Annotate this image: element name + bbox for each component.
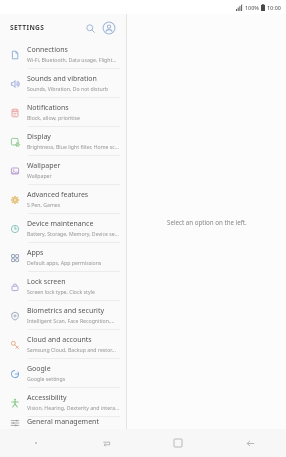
staticText: Vision, Hearing, Dexterity and intera... (27, 404, 120, 411)
button[interactable]: Recents (142, 429, 214, 457)
staticText: Sounds, Vibration, Do not disturb (27, 85, 108, 92)
staticText: General management (27, 417, 99, 427)
staticText: 10:00 (267, 4, 281, 11)
staticText: Advanced features (27, 190, 89, 200)
staticText: Google settings (27, 375, 66, 382)
staticText: Device maintenance (27, 219, 94, 229)
button[interactable]: Back (214, 429, 286, 457)
staticText: Connections (27, 45, 68, 55)
staticText: Select an option on the left. (167, 218, 247, 226)
staticText: Biometrics and security (27, 306, 104, 316)
staticText: Block, allow, prioritise (27, 114, 80, 121)
button[interactable]: Account (100, 19, 117, 36)
staticText: 100% (245, 4, 259, 11)
staticText: Samsung Cloud, Backup and restor... (27, 346, 116, 353)
button[interactable]: Advanced features (0, 185, 126, 213)
button[interactable]: Cloud and accounts (0, 330, 126, 358)
button[interactable]: Display (0, 127, 126, 155)
staticText: Wi-Fi, Bluetooth, Data usage, Flight... (27, 56, 117, 63)
button[interactable]: Notifications (0, 98, 126, 126)
staticText: Intelligent Scan, Face Recognition,... (27, 317, 115, 324)
staticText: Battery, Storage, Memory, Device se... (27, 230, 119, 237)
staticText: Wallpaper (27, 172, 52, 179)
staticText: S Pen, Games (27, 201, 61, 208)
staticText: Display (27, 132, 51, 142)
button[interactable]: General management (0, 417, 126, 429)
button[interactable]: Google (0, 359, 126, 387)
staticText: Screen lock type, Clock style (27, 288, 95, 295)
button[interactable]: Apps (0, 243, 126, 271)
staticText: Notifications (27, 103, 69, 113)
button[interactable]: Keyboard (71, 429, 142, 457)
staticText: Cloud and accounts (27, 335, 92, 345)
button[interactable]: Wallpaper (0, 156, 126, 184)
button[interactable]: Lock screen (0, 272, 126, 300)
button[interactable]: Accessibility (0, 388, 126, 416)
button[interactable]: Connections (0, 40, 126, 68)
staticText: Apps (27, 248, 44, 258)
staticText: Default apps, App permissions (27, 259, 102, 266)
button[interactable]: Search (82, 20, 98, 36)
button[interactable]: Device maintenance (0, 214, 126, 242)
staticText: Wallpaper (27, 161, 61, 171)
staticText: Google (27, 364, 51, 374)
staticText: SETTINGS (10, 23, 45, 32)
staticText: Lock screen (27, 277, 66, 287)
staticText: Brightness, Blue light filter, Home sc..… (27, 143, 120, 150)
staticText: Sounds and vibration (27, 74, 97, 84)
staticText: Accessibility (27, 393, 67, 403)
button[interactable]: Sounds and vibration (0, 69, 126, 97)
button[interactable]: Biometrics and security (0, 301, 126, 329)
